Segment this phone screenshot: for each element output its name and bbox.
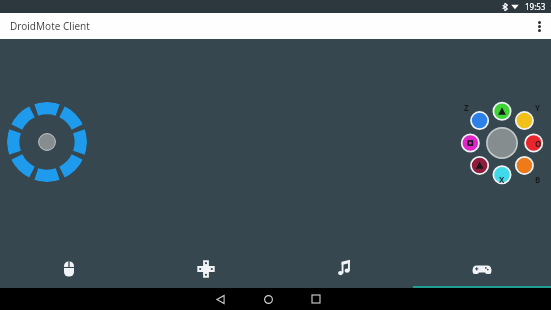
button[interactable]: Directional pad (7, 102, 87, 182)
button[interactable]: Button Z (457, 98, 475, 116)
button[interactable]: Gamepad (413, 250, 551, 288)
button[interactable]: Media (275, 250, 413, 288)
button[interactable]: Button Y (529, 98, 547, 116)
staticText: Z (464, 102, 469, 113)
button[interactable]: Back (205, 288, 235, 310)
staticText: B (535, 174, 541, 185)
button[interactable]: Start button (457, 170, 475, 188)
button[interactable]: Button A (493, 98, 511, 116)
staticText: X (499, 174, 505, 185)
button[interactable]: More options (527, 13, 551, 39)
staticText: O (535, 138, 542, 149)
button[interactable]: Keyboard (137, 250, 275, 288)
staticText: DroidMote Client (10, 19, 90, 33)
button[interactable]: Button X (493, 170, 511, 188)
button[interactable]: Button B (529, 170, 547, 188)
button[interactable]: Home (253, 288, 283, 310)
staticText: Y (535, 102, 541, 113)
button[interactable]: Mouse (0, 250, 137, 288)
button[interactable]: Select button (457, 134, 475, 152)
button[interactable]: Recent apps (301, 288, 331, 310)
staticText: 19:53 (525, 1, 546, 12)
button[interactable]: Button O (529, 134, 547, 152)
